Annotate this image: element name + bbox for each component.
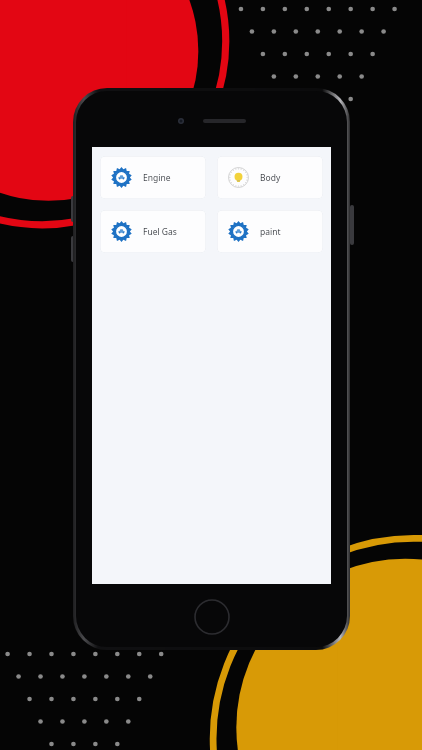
- staticText: Fuel Gas: [143, 226, 177, 238]
- staticText: paint: [260, 226, 281, 238]
- button[interactable]: Engine: [100, 156, 206, 199]
- button[interactable]: Body: [217, 156, 323, 199]
- staticText: Body: [260, 172, 281, 184]
- staticText: Engine: [143, 172, 171, 184]
- button[interactable]: Fuel Gas: [100, 210, 206, 253]
- button[interactable]: paint: [217, 210, 323, 253]
